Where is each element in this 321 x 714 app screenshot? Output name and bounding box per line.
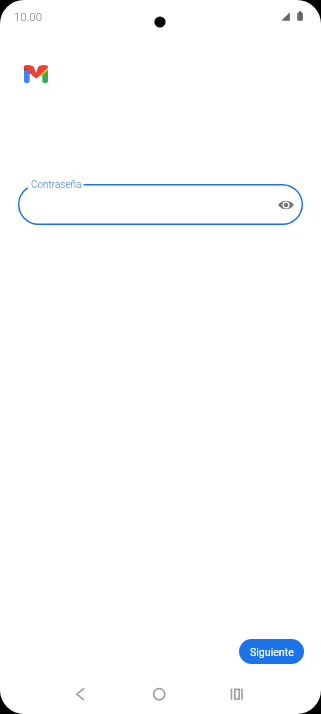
button[interactable]: Mostrar contraseña [275, 194, 297, 216]
button[interactable]: Home [143, 678, 175, 710]
button[interactable]: Siguiente [239, 639, 304, 664]
button[interactable]: Contraseña [18, 184, 303, 225]
staticText: Siguiente [250, 646, 294, 658]
button[interactable]: Recent apps [220, 678, 252, 710]
staticText: 10.00 [14, 10, 42, 23]
staticText: Contraseña [31, 179, 82, 191]
button[interactable]: Back [64, 678, 96, 710]
